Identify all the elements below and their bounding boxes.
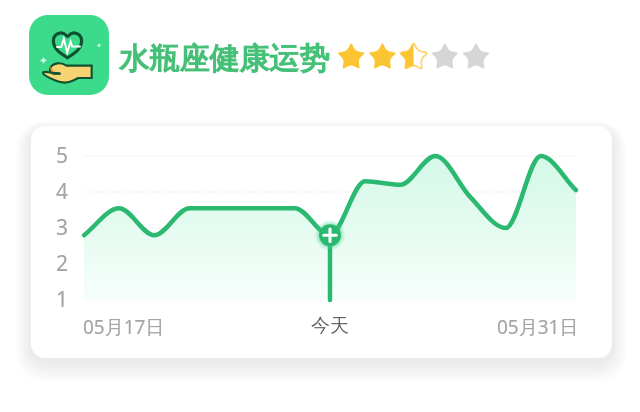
- button[interactable]: Rating 2.5 of 5 stars: [336, 42, 492, 68]
- staticText: 今天: [311, 314, 349, 338]
- staticText: 05月31日: [497, 314, 579, 340]
- staticText: 4: [47, 177, 77, 207]
- staticText: 5: [47, 141, 77, 171]
- staticText: 1: [47, 285, 77, 315]
- button[interactable]: Health fortune app icon: [29, 15, 109, 95]
- button[interactable]: 1: [31, 126, 612, 358]
- staticText: 3: [47, 213, 77, 243]
- staticText: 水瓶座健康运势: [119, 40, 329, 78]
- staticText: 2: [47, 249, 77, 279]
- button[interactable]: 水瓶座健康运势: [119, 40, 329, 78]
- staticText: 05月17日: [83, 314, 165, 340]
